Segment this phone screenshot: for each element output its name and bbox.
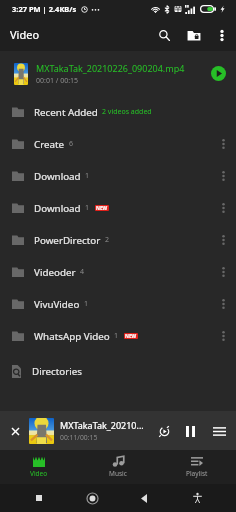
button[interactable]: MXTakaTak_20210226_090204.mp4: [0, 51, 236, 96]
staticText: Directories: [32, 365, 83, 378]
button[interactable]: Video: [0, 450, 78, 484]
button[interactable]: More options: [212, 229, 234, 251]
button[interactable]: Close: [5, 421, 25, 441]
staticText: Music: [109, 469, 127, 478]
button[interactable]: Download: [0, 160, 236, 192]
button[interactable]: Recent Added: [0, 96, 236, 128]
staticText: 3:27 PM | 2.4KB/s: [12, 4, 77, 14]
button[interactable]: Create: [0, 128, 236, 160]
staticText: 1: [114, 331, 119, 341]
button[interactable]: Audio track: [153, 420, 175, 442]
staticText: 00:01 / 00:15: [36, 76, 79, 86]
staticText: 00:11/00:15: [60, 433, 98, 442]
button[interactable]: Back: [130, 484, 158, 512]
button[interactable]: Directories: [0, 355, 236, 387]
button[interactable]: More options: [216, 23, 227, 47]
button[interactable]: More options: [212, 165, 234, 187]
button[interactable]: Playlist: [157, 450, 236, 484]
staticText: 1: [85, 171, 90, 181]
button[interactable]: WhatsApp Video: [0, 320, 236, 352]
button[interactable]: Pause: [179, 420, 201, 442]
button[interactable]: Playlist: [208, 420, 230, 442]
staticText: WhatsApp Video: [34, 330, 110, 343]
button[interactable]: Videoder: [0, 256, 236, 288]
staticText: 1: [85, 203, 90, 213]
button[interactable]: More options: [212, 133, 234, 155]
button[interactable]: Accessibility: [183, 484, 211, 512]
staticText: PowerDirector: [34, 234, 101, 247]
button[interactable]: More options: [212, 293, 234, 315]
staticText: NEW: [96, 205, 108, 211]
staticText: 1: [84, 299, 89, 309]
button[interactable]: Play: [211, 66, 226, 81]
staticText: NEW: [125, 333, 137, 339]
button[interactable]: More options: [212, 261, 234, 283]
button[interactable]: Search: [152, 23, 176, 47]
button[interactable]: Recents: [25, 484, 53, 512]
staticText: Download: [34, 202, 81, 215]
button[interactable]: Private folder: [182, 23, 206, 47]
button[interactable]: Music: [78, 450, 157, 484]
staticText: 2: [105, 235, 110, 245]
button[interactable]: Download: [0, 192, 236, 224]
staticText: 4: [80, 267, 85, 277]
button[interactable]: More options: [212, 325, 234, 347]
button[interactable]: PowerDirector: [0, 224, 236, 256]
staticText: Video: [10, 27, 40, 42]
button[interactable]: More options: [212, 197, 234, 219]
staticText: Download: [34, 170, 81, 183]
staticText: VivuVideo: [34, 298, 80, 311]
staticText: MXTakaTak_20210226_090204.mp4: [36, 62, 185, 74]
staticText: Video: [30, 469, 48, 478]
button[interactable]: Home: [78, 484, 106, 512]
staticText: Recent Added: [34, 106, 98, 119]
staticText: Videoder: [34, 266, 76, 279]
button[interactable]: VivuVideo: [0, 288, 236, 320]
staticText: Playlist: [186, 469, 208, 478]
staticText: 2 videos added: [102, 107, 152, 117]
staticText: Create: [34, 138, 65, 151]
staticText: MXTakaTak_20210...: [60, 419, 144, 431]
staticText: 6: [69, 139, 74, 149]
